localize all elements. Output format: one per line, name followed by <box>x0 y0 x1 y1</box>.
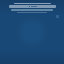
button[interactable] <box>9 5 56 8</box>
